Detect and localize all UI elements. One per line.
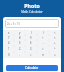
button[interactable]: ^ [49, 46, 61, 52]
button[interactable]: + [49, 40, 61, 46]
staticText: . [19, 53, 20, 57]
button[interactable]: ↵ [49, 52, 61, 58]
button[interactable]: 8 [14, 35, 25, 40]
staticText: 0 [8, 53, 10, 57]
staticText: 9 [30, 36, 32, 40]
staticText: Photo [24, 2, 40, 9]
staticText: ( [31, 31, 32, 35]
button[interactable]: x [3, 30, 14, 35]
button[interactable]: = [37, 46, 49, 52]
button[interactable]: ÷ [37, 35, 49, 40]
staticText: ↵ [54, 54, 57, 57]
staticText: 2 [19, 47, 21, 51]
staticText: ^ [54, 47, 56, 51]
staticText: + [54, 41, 56, 45]
button[interactable]: 2x + 5 = 15 [5, 19, 59, 28]
staticText: 6 [30, 41, 32, 45]
button[interactable]: 7 [3, 35, 14, 40]
button[interactable]: 9 [25, 35, 37, 40]
button[interactable]: 1 [3, 46, 14, 52]
staticText: - [43, 41, 44, 45]
staticText: 7 [8, 36, 10, 40]
staticText: 3 [30, 47, 32, 51]
button[interactable]: y [14, 30, 25, 35]
button[interactable]: ( [25, 30, 37, 35]
staticText: 5 [19, 41, 21, 45]
button[interactable]: × [49, 35, 61, 40]
staticText: ÷ [42, 36, 44, 40]
button[interactable]: Calculate [6, 65, 58, 71]
staticText: < [54, 31, 56, 35]
staticText: 4 [8, 41, 10, 45]
staticText: = [42, 47, 44, 51]
staticText: 2x + 5 = 15 [7, 22, 20, 26]
button[interactable]: π [37, 52, 49, 58]
staticText: √ [30, 54, 32, 57]
button[interactable]: 0 [3, 52, 14, 58]
staticText: π [42, 53, 44, 57]
button[interactable]: 5 [14, 40, 25, 46]
staticText: 1 [8, 47, 10, 51]
button[interactable]: < [49, 30, 61, 35]
button[interactable]: 3 [25, 46, 37, 52]
staticText: y [19, 31, 21, 35]
staticText: Math Calculator [21, 10, 43, 14]
button[interactable]: √ [25, 52, 37, 58]
button[interactable]: 4 [3, 40, 14, 46]
staticText: ) [43, 31, 44, 35]
staticText: x [8, 31, 10, 35]
staticText: 8 [19, 36, 21, 40]
button[interactable]: - [37, 40, 49, 46]
button[interactable]: 6 [25, 40, 37, 46]
staticText: Calculate [25, 66, 39, 70]
button[interactable]: ) [37, 30, 49, 35]
staticText: × [54, 36, 56, 40]
button[interactable]: 2 [14, 46, 25, 52]
